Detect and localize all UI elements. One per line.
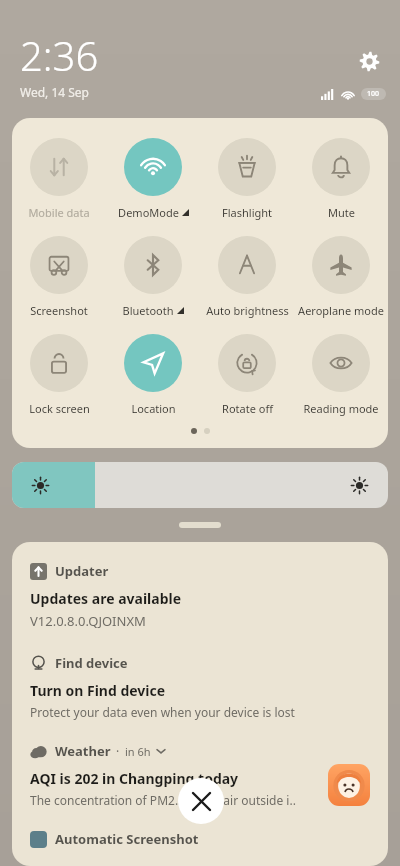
button[interactable]: Settings (352, 44, 386, 78)
staticText: Auto brightness (206, 303, 289, 318)
staticText: in 6h (125, 744, 151, 759)
staticText: DemoMode (118, 205, 179, 220)
staticText: Find device (55, 654, 128, 672)
staticText: Mute (328, 205, 355, 220)
staticText: 100 (367, 89, 380, 99)
button[interactable]: Brightness (12, 462, 388, 508)
staticText: Screenshot (30, 303, 88, 318)
button[interactable]: Find device (30, 654, 370, 720)
staticText: AQI is 202 in Changping today (30, 769, 239, 788)
button[interactable]: Auto brightness (200, 236, 294, 318)
staticText: Rotate off (222, 401, 273, 416)
staticText: Updates are available (30, 589, 182, 608)
button[interactable]: Close (178, 778, 224, 824)
button[interactable]: Updater (30, 562, 370, 630)
staticText: Protect your data even when your device … (30, 704, 295, 720)
staticText: V12.0.8.0.QJOINXM (30, 612, 146, 630)
button[interactable]: Reading mode (294, 334, 388, 416)
staticText: Automatic Screenshot (55, 830, 199, 848)
button[interactable]: Automatic Screenshot (30, 830, 370, 866)
staticText: Flashlight (222, 205, 272, 220)
staticText: The concentration of PM2.5 in the air ou… (30, 792, 296, 808)
button[interactable]: Rotate off (200, 334, 294, 416)
staticText: · (116, 743, 120, 759)
button[interactable]: Lock screen (12, 334, 106, 416)
button[interactable]: Screenshot (12, 236, 106, 318)
staticText: Turn on Find device (30, 681, 166, 700)
staticText: Aeroplane mode (298, 303, 384, 318)
staticText: Reading mode (303, 401, 379, 416)
button[interactable]: Mute (294, 138, 388, 220)
staticText: 2:36 (20, 28, 99, 82)
staticText: Lock screen (29, 401, 90, 416)
button[interactable]: Flashlight (200, 138, 294, 220)
button[interactable]: DemoMode (106, 138, 200, 220)
button[interactable]: Mobile data (12, 138, 106, 220)
staticText: Updater (55, 562, 109, 580)
button[interactable]: Bluetooth (106, 236, 200, 318)
button[interactable]: Weather (30, 742, 370, 808)
staticText: Weather (55, 742, 111, 760)
staticText: Wed, 14 Sep (20, 84, 89, 100)
staticText: Mobile data (28, 205, 90, 220)
staticText: Location (131, 401, 176, 416)
button[interactable]: Aeroplane mode (294, 236, 388, 318)
staticText: Bluetooth (122, 303, 174, 318)
button[interactable]: Location (106, 334, 200, 416)
